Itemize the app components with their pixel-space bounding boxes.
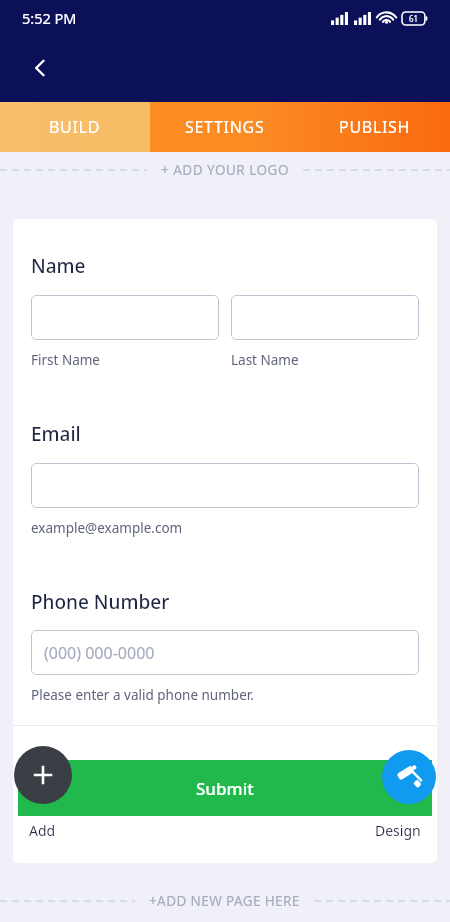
staticText: Please enter a valid phone number. <box>31 686 254 704</box>
staticText: Email <box>31 421 81 447</box>
staticText: +ADD NEW PAGE HERE <box>149 892 300 910</box>
button[interactable]: Back <box>20 48 60 88</box>
staticText: Phone Number <box>31 589 170 615</box>
staticText: Last Name <box>231 351 299 369</box>
staticText: Submit <box>196 777 254 800</box>
button[interactable]: Submit <box>18 760 432 816</box>
staticText: example@example.com <box>31 519 183 537</box>
staticText: Name <box>31 253 86 279</box>
staticText: + ADD YOUR LOGO <box>161 161 289 179</box>
button[interactable] <box>231 295 419 340</box>
button[interactable] <box>31 295 219 340</box>
button[interactable]: Design <box>382 750 436 804</box>
staticText: First Name <box>31 351 100 369</box>
staticText: PUBLISH <box>339 116 411 138</box>
staticText: 5:52 PM <box>22 8 77 28</box>
button[interactable]: + ADD YOUR LOGO <box>0 159 450 181</box>
button[interactable]: PUBLISH <box>300 102 450 152</box>
button[interactable]: +ADD NEW PAGE HERE <box>0 890 450 912</box>
staticText: BUILD <box>49 116 101 138</box>
button[interactable]: SETTINGS <box>150 102 300 152</box>
button[interactable] <box>31 463 419 508</box>
button[interactable]: (000) 000-0000 <box>31 630 419 675</box>
staticText: SETTINGS <box>185 116 265 138</box>
staticText: 61 <box>409 13 419 24</box>
button[interactable]: BUILD <box>0 102 150 152</box>
staticText: (000) 000-0000 <box>44 642 155 664</box>
staticText: Design <box>375 821 421 840</box>
button[interactable]: Add <box>14 746 72 804</box>
staticText: Add <box>29 821 56 840</box>
